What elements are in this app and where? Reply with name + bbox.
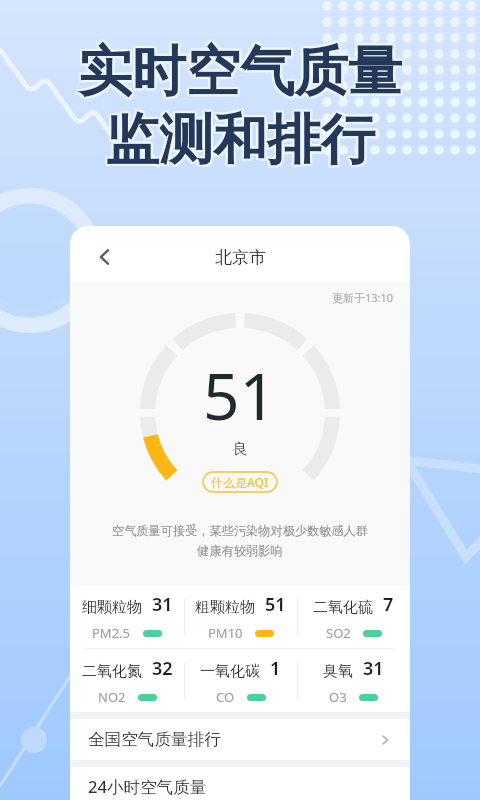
staticText: 实时空气质量	[78, 38, 402, 106]
staticText: 7	[383, 592, 394, 617]
staticText: 32	[152, 656, 173, 681]
staticText: PM2.5	[92, 624, 131, 642]
button[interactable]: 24小时空气质量	[70, 767, 410, 800]
staticText: NO2	[98, 688, 126, 706]
staticText: 实时空气质量	[78, 36, 402, 104]
staticText: 臭氧	[323, 662, 353, 681]
button[interactable]: 什么是AQI	[202, 471, 278, 493]
button[interactable]: Back	[92, 244, 118, 270]
staticText: 51	[203, 352, 277, 439]
staticText: 良	[233, 440, 248, 459]
staticText: 实时空气质量	[78, 40, 402, 108]
staticText: 粗颗粒物	[195, 598, 255, 617]
staticText: 24小时空气质量	[88, 775, 207, 798]
staticText: 监测和排行	[105, 104, 375, 172]
staticText: 空气质量可接受，某些污染物对极少数敏感人群 健康有较弱影响	[70, 523, 410, 559]
button[interactable]: 二氧化氮	[70, 649, 184, 712]
staticText: 北京市	[215, 247, 266, 268]
staticText: O3	[329, 688, 347, 706]
staticText: 一氧化碳	[200, 662, 260, 681]
staticText: 什么是AQI	[211, 474, 269, 490]
staticText: 全国空气质量排行	[88, 729, 221, 750]
staticText: 监测和排行	[105, 108, 375, 176]
staticText: 实时空气质量	[76, 40, 400, 108]
staticText: 实时空气质量	[76, 38, 400, 106]
staticText: 更新于13:10	[332, 290, 394, 305]
staticText: 二氧化氮	[82, 662, 142, 681]
staticText: 实时空气质量	[80, 40, 404, 108]
button[interactable]: 细颗粒物	[70, 585, 184, 648]
staticText: SO2	[326, 624, 351, 642]
button[interactable]: 一氧化碳	[184, 649, 297, 712]
staticText: 1	[270, 656, 281, 681]
button[interactable]: 粗颗粒物	[184, 585, 297, 648]
button[interactable]: 全国空气质量排行	[70, 719, 410, 760]
staticText: 实时空气质量	[80, 36, 404, 104]
button[interactable]: 臭氧	[297, 649, 410, 712]
staticText: 监测和排行	[105, 106, 375, 174]
button[interactable]: 二氧化硫	[297, 585, 410, 648]
staticText: 细颗粒物	[82, 598, 142, 617]
staticText: 实时空气质量	[80, 38, 404, 106]
staticText: CO	[216, 688, 235, 706]
staticText: 实时空气质量	[76, 36, 400, 104]
staticText: 二氧化硫	[313, 598, 373, 617]
staticText: 监测和排行	[107, 108, 377, 176]
staticText: 31	[363, 656, 384, 681]
staticText: 监测和排行	[103, 108, 373, 176]
staticText: 监测和排行	[103, 106, 373, 174]
staticText: PM10	[208, 624, 243, 642]
staticText: 31	[152, 592, 173, 617]
staticText: 51	[265, 592, 286, 617]
staticText: 监测和排行	[107, 106, 377, 174]
staticText: 监测和排行	[103, 104, 373, 172]
staticText: 监测和排行	[107, 104, 377, 172]
